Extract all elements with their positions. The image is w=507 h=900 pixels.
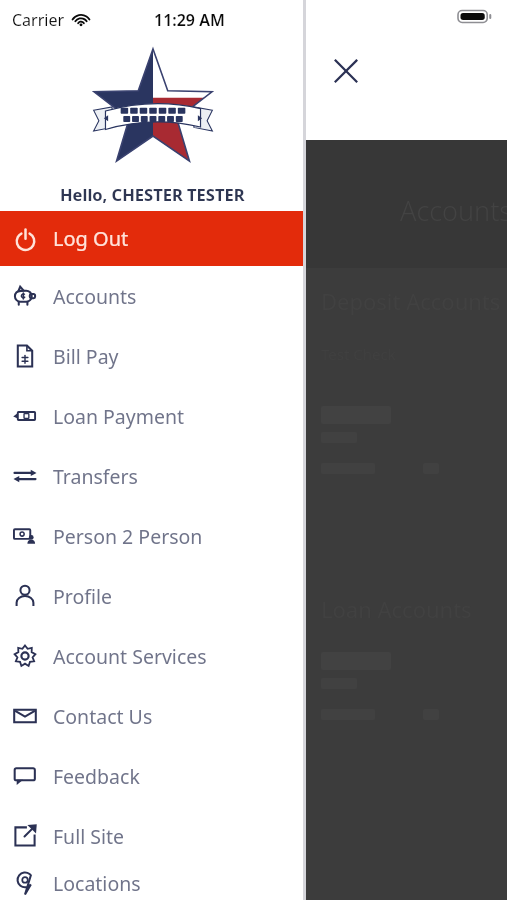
staticText: Carrier xyxy=(12,9,65,31)
button[interactable]: Person 2 Person xyxy=(0,506,305,566)
button[interactable]: Accounts xyxy=(0,266,305,326)
staticText: Locations xyxy=(53,870,141,897)
button[interactable]: Transfers xyxy=(0,446,305,506)
button[interactable]: Loan Payment xyxy=(0,386,305,446)
button[interactable]: Account Services xyxy=(0,626,305,686)
staticText: Account Services xyxy=(53,643,207,670)
staticText: Full Site xyxy=(53,823,125,850)
button[interactable]: Profile xyxy=(0,566,305,626)
staticText: 11:29 AM xyxy=(154,9,225,31)
button[interactable]: Contact Us xyxy=(0,686,305,746)
button[interactable]: Full Site xyxy=(0,806,305,866)
button[interactable]: Log Out xyxy=(0,211,305,266)
staticText: Feedback xyxy=(53,763,140,790)
staticText: Accounts xyxy=(53,283,137,310)
staticText: Loan Payment xyxy=(53,403,185,430)
staticText: Contact Us xyxy=(53,703,153,730)
staticText: Profile xyxy=(53,583,113,610)
button[interactable]: Bill Pay xyxy=(0,326,305,386)
staticText: Log Out xyxy=(53,225,129,252)
staticText: Hello, CHESTER TESTER xyxy=(60,183,245,205)
button[interactable]: Locations xyxy=(0,866,305,900)
staticText: Bill Pay xyxy=(53,343,119,370)
staticText: Person 2 Person xyxy=(53,523,203,550)
staticText: Transfers xyxy=(53,463,138,490)
button[interactable]: Close menu xyxy=(319,44,373,98)
button[interactable]: Feedback xyxy=(0,746,305,806)
